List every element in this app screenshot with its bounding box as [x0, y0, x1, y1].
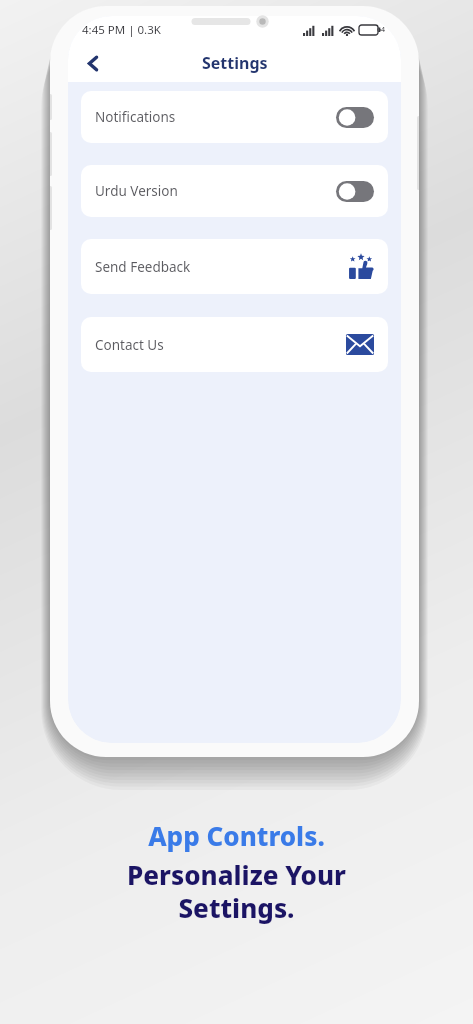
button[interactable]: Notifications [81, 91, 388, 143]
button[interactable]: Urdu Version [81, 165, 388, 217]
button[interactable]: Contact Us [81, 317, 388, 372]
staticText: 64 [377, 25, 386, 35]
staticText: App Controls. [148, 818, 325, 853]
staticText: Settings [202, 52, 268, 74]
staticText: Urdu Version [95, 182, 178, 200]
staticText: Notifications [95, 108, 176, 126]
button[interactable]: Send Feedback [81, 239, 388, 294]
staticText: 4:45 PM | 0.3K [82, 22, 161, 38]
staticText: Send Feedback [95, 258, 191, 276]
button[interactable]: Contact Us [346, 334, 374, 355]
button[interactable]: Toggle [336, 107, 374, 128]
button[interactable]: Back [74, 44, 112, 82]
button[interactable]: Send Feedback [348, 254, 374, 280]
staticText: Personalize Your Settings. [127, 857, 346, 926]
staticText: Contact Us [95, 336, 164, 354]
button[interactable]: Toggle [336, 181, 374, 202]
